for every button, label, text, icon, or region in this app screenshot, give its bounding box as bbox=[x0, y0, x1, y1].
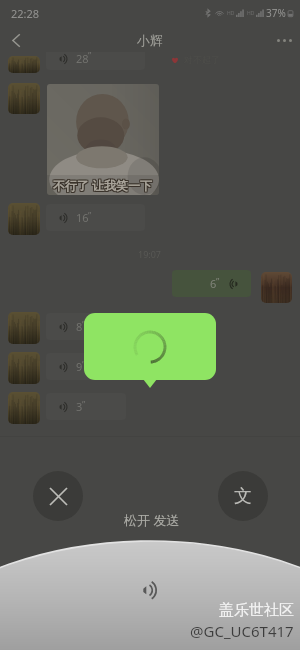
staticText: 松开 发送 bbox=[124, 511, 180, 529]
staticText: ” bbox=[82, 398, 86, 410]
button[interactable]: 16 bbox=[46, 204, 145, 231]
staticText: 8 bbox=[76, 319, 83, 334]
button[interactable]: Back bbox=[2, 26, 30, 54]
button[interactable]: 6 bbox=[172, 270, 251, 297]
button[interactable]: Contact avatar bbox=[8, 312, 40, 344]
staticText: 文 bbox=[234, 485, 252, 508]
staticText: 28 bbox=[76, 52, 89, 66]
button[interactable]: Photo message bbox=[47, 84, 159, 195]
staticText: 不行了 让我笑一下 bbox=[52, 176, 152, 192]
button[interactable]: Cancel recording bbox=[33, 471, 83, 521]
button[interactable]: Contact avatar bbox=[261, 272, 292, 303]
staticText: ” bbox=[88, 209, 92, 221]
staticText: 6 bbox=[210, 276, 217, 291]
staticText: ” bbox=[88, 52, 92, 61]
button[interactable]: 8 bbox=[46, 313, 142, 340]
staticText: 3 bbox=[76, 399, 83, 414]
button[interactable]: 3 bbox=[46, 393, 126, 420]
button[interactable]: 对不起了 bbox=[171, 54, 220, 65]
staticText: 37% bbox=[266, 6, 286, 20]
staticText: 不行了 让我笑一下 bbox=[53, 178, 153, 194]
button[interactable]: Contact avatar bbox=[8, 392, 40, 424]
staticText: ” bbox=[216, 275, 220, 287]
staticText: 22:28 bbox=[11, 6, 40, 21]
staticText: 不行了 让我笑一下 bbox=[53, 177, 153, 193]
staticText: 不行了 让我笑一下 bbox=[52, 177, 152, 193]
button[interactable]: 9 bbox=[46, 353, 138, 380]
button[interactable]: Contact avatar bbox=[8, 203, 40, 235]
staticText: 19:07 bbox=[138, 248, 162, 260]
staticText: HD bbox=[227, 10, 235, 17]
staticText: 不行了 让我笑一下 bbox=[52, 178, 152, 194]
button[interactable]: More options bbox=[270, 26, 298, 54]
button[interactable]: 28 bbox=[46, 52, 145, 70]
staticText: 不行了 让我笑一下 bbox=[54, 176, 154, 192]
button[interactable]: Contact avatar bbox=[8, 83, 40, 114]
button[interactable]: Convert speech to text bbox=[218, 471, 268, 521]
staticText: 不行了 让我笑一下 bbox=[54, 178, 154, 194]
button[interactable]: Contact avatar bbox=[8, 56, 40, 73]
staticText: 9 bbox=[76, 359, 83, 374]
staticText: 不行了 让我笑一下 bbox=[54, 177, 154, 193]
staticText: 小辉 bbox=[137, 32, 163, 48]
staticText: @GC_UC6T417 bbox=[190, 621, 294, 641]
staticText: 盖乐世社区 bbox=[219, 601, 294, 620]
staticText: HD bbox=[247, 10, 255, 17]
staticText: ” bbox=[82, 318, 86, 330]
staticText: 16 bbox=[76, 210, 89, 225]
staticText: 不行了 让我笑一下 bbox=[53, 176, 153, 192]
button[interactable]: Hold to talk bbox=[130, 569, 170, 609]
button[interactable]: Contact avatar bbox=[8, 352, 40, 384]
staticText: ” bbox=[82, 358, 86, 370]
